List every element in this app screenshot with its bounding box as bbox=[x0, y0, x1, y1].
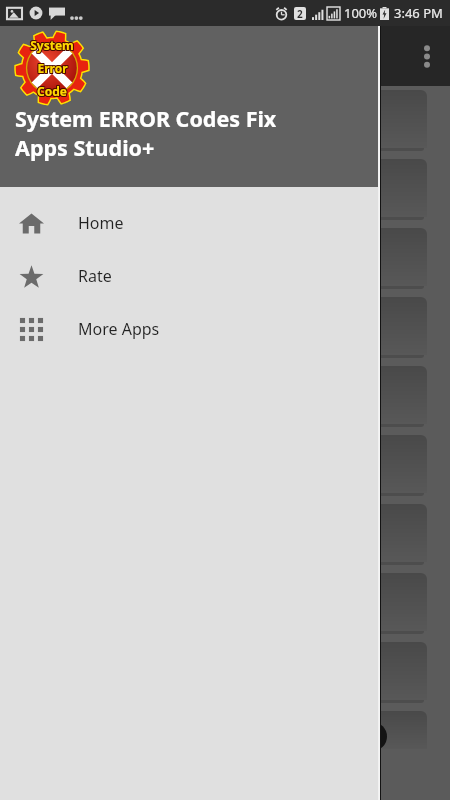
staticText: Error bbox=[37, 60, 68, 76]
button[interactable] bbox=[22, 711, 427, 749]
button[interactable] bbox=[22, 90, 427, 148]
staticText: Error bbox=[36, 59, 67, 75]
staticText: Error bbox=[36, 60, 67, 76]
staticText: Code bbox=[38, 84, 68, 100]
staticText: System bbox=[30, 38, 74, 54]
staticText: Code bbox=[37, 84, 67, 100]
staticText: Error bbox=[37, 61, 68, 77]
button[interactable] bbox=[22, 366, 427, 424]
button[interactable]: Home bbox=[0, 196, 381, 249]
button[interactable] bbox=[22, 297, 427, 355]
staticText: Error bbox=[38, 61, 69, 77]
button[interactable] bbox=[22, 159, 427, 217]
staticText: System bbox=[30, 36, 74, 52]
button[interactable] bbox=[22, 573, 427, 631]
staticText: More Apps bbox=[78, 318, 160, 340]
staticText: System bbox=[29, 38, 73, 54]
staticText: Code bbox=[36, 83, 66, 99]
staticText: Code bbox=[38, 83, 68, 99]
button[interactable]: More Apps bbox=[0, 302, 381, 355]
staticText: System bbox=[29, 36, 73, 52]
staticText: System bbox=[31, 38, 75, 54]
staticText: Error bbox=[38, 60, 69, 76]
staticText: Code bbox=[37, 83, 67, 99]
button[interactable] bbox=[22, 504, 427, 562]
staticText: 2 bbox=[297, 7, 303, 20]
button[interactable]: Rate bbox=[0, 249, 381, 302]
staticText: System bbox=[31, 36, 75, 52]
staticText: Code bbox=[36, 84, 66, 100]
button[interactable] bbox=[22, 435, 427, 493]
staticText: Code bbox=[37, 82, 67, 98]
staticText: System bbox=[31, 37, 75, 53]
staticText: Error bbox=[37, 59, 68, 75]
staticText: System bbox=[30, 37, 74, 53]
staticText: Error bbox=[36, 61, 67, 77]
staticText: System bbox=[29, 37, 73, 53]
staticText: System ERROR Codes Fix Apps Studio+ bbox=[15, 104, 277, 162]
staticText: Rate bbox=[78, 265, 112, 287]
staticText: Error bbox=[38, 59, 69, 75]
staticText: 3:46 PM bbox=[394, 4, 443, 22]
button[interactable] bbox=[22, 642, 427, 700]
button[interactable]: Action bbox=[358, 722, 387, 751]
button[interactable] bbox=[22, 228, 427, 286]
button[interactable]: More options bbox=[406, 34, 450, 78]
staticText: Code bbox=[38, 82, 68, 98]
staticText: Home bbox=[78, 212, 124, 234]
staticText: Code bbox=[36, 82, 66, 98]
staticText: 100% bbox=[344, 4, 378, 22]
